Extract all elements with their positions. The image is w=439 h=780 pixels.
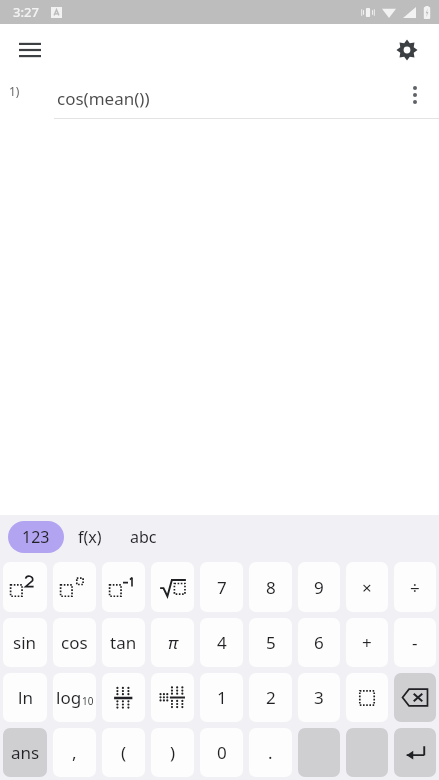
button[interactable]: , [53, 728, 96, 777]
button[interactable]: ( [102, 728, 145, 777]
button[interactable]: 6 [298, 618, 340, 667]
button[interactable]: - [394, 618, 436, 667]
button[interactable]: ÷ [394, 562, 436, 612]
staticText: π [168, 631, 178, 654]
staticText: 6 [314, 631, 324, 654]
button[interactable]: inv [102, 562, 145, 612]
button[interactable]: mixfrac [151, 673, 194, 722]
button[interactable]: × [346, 562, 388, 612]
staticText: f(x) [78, 526, 102, 548]
button[interactable]: sin [3, 618, 47, 667]
button[interactable]: enter [394, 728, 436, 777]
staticText: . [268, 741, 273, 764]
staticText: abc [130, 526, 157, 548]
button[interactable]: bksp [394, 673, 436, 722]
staticText: 123 [22, 526, 50, 548]
button[interactable]: More options [395, 75, 435, 115]
staticText: 10 [82, 694, 94, 708]
button[interactable]: + [346, 618, 388, 667]
staticText: tan [110, 631, 137, 654]
staticText: cos(mean()) [57, 87, 150, 110]
button[interactable]: 2 [249, 673, 292, 722]
button[interactable]: Menu [8, 28, 52, 72]
staticText: ( [121, 741, 127, 764]
staticText: 2 [266, 686, 276, 709]
button[interactable]: abc [116, 521, 171, 553]
button[interactable]: pow [53, 562, 96, 612]
staticText: , [72, 741, 77, 764]
staticText: × [362, 576, 372, 599]
button[interactable]: Settings [385, 28, 429, 72]
staticText: 7 [217, 576, 227, 599]
button[interactable]: 3 [298, 673, 340, 722]
staticText: 3:27 [13, 3, 39, 21]
button[interactable]: . [249, 728, 292, 777]
staticText: 8 [266, 576, 276, 599]
staticText: 3 [314, 686, 324, 709]
button[interactable]: sqrt [151, 562, 194, 612]
button[interactable]: 7 [200, 562, 243, 612]
staticText: ans [11, 741, 40, 764]
button[interactable]: 123 [8, 521, 64, 553]
button[interactable]: 9 [298, 562, 340, 612]
staticText: 0 [217, 741, 227, 764]
button[interactable]: ln [3, 673, 47, 722]
button[interactable]: 8 [249, 562, 292, 612]
staticText: 1 [217, 686, 227, 709]
staticText: log [56, 686, 82, 709]
button[interactable] [298, 728, 340, 777]
staticText: - [412, 631, 418, 654]
button[interactable]: 4 [200, 618, 243, 667]
button[interactable]: ans [3, 728, 47, 777]
staticText: cos [61, 631, 88, 654]
button[interactable]: ) [151, 728, 194, 777]
staticText: ÷ [410, 576, 420, 599]
button[interactable]: 0 [200, 728, 243, 777]
staticText: ) [170, 741, 176, 764]
button[interactable]: log [53, 673, 96, 722]
button[interactable]: π [151, 618, 194, 667]
staticText: 4 [217, 631, 227, 654]
button[interactable]: 1 [200, 673, 243, 722]
staticText: sin [13, 631, 37, 654]
staticText: 1) [9, 83, 20, 99]
button[interactable] [346, 728, 388, 777]
button[interactable]: frac [102, 673, 145, 722]
staticText: 5 [266, 631, 276, 654]
button[interactable]: sq [3, 562, 47, 612]
button[interactable]: box [346, 673, 388, 722]
button[interactable]: 5 [249, 618, 292, 667]
button[interactable]: cos [53, 618, 96, 667]
staticText: 9 [314, 576, 324, 599]
staticText: ln [18, 686, 33, 709]
staticText: + [362, 631, 372, 654]
button[interactable]: f(x) [64, 521, 116, 553]
button[interactable]: tan [102, 618, 145, 667]
